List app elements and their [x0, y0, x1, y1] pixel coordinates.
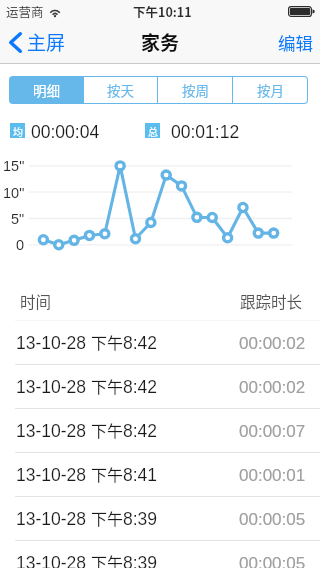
button[interactable]: 13-10-28 下午8:42: [0, 321, 320, 365]
staticText: 总: [148, 124, 158, 138]
staticText: 13-10-28 下午8:39: [16, 550, 157, 568]
staticText: 下午10:11: [133, 2, 192, 20]
staticText: 家务: [141, 28, 180, 56]
staticText: 13-10-28 下午8:42: [16, 330, 157, 353]
staticText: 13-10-28 下午8:41: [16, 462, 157, 485]
staticText: 0: [16, 237, 25, 253]
staticText: 13-10-28 下午8:42: [16, 418, 157, 441]
staticText: 运营商: [6, 2, 44, 20]
staticText: 按周: [182, 80, 209, 100]
staticText: 00:00:01: [239, 466, 306, 485]
button[interactable]: 13-10-28 下午8:39: [0, 497, 320, 541]
staticText: 00:01:12: [171, 122, 240, 138]
button[interactable]: 13-10-28 下午8:39: [0, 541, 320, 568]
staticText: 13-10-28 下午8:39: [16, 506, 157, 529]
button[interactable]: 按天: [84, 77, 157, 103]
staticText: 主屏: [27, 28, 66, 56]
button[interactable]: 主屏: [0, 21, 76, 63]
staticText: 15": [3, 158, 25, 174]
staticText: 00:00:07: [239, 422, 306, 441]
button[interactable]: 按周: [158, 77, 232, 103]
staticText: 10": [3, 185, 25, 201]
staticText: 明细: [33, 80, 60, 100]
button[interactable]: 编辑: [266, 22, 320, 63]
button[interactable]: 13-10-28 下午8:42: [0, 409, 320, 453]
button[interactable]: 13-10-28 下午8:42: [0, 365, 320, 409]
staticText: 00:00:05: [239, 554, 306, 568]
staticText: 跟踪时长: [240, 290, 303, 312]
staticText: 00:00:02: [239, 378, 306, 397]
button[interactable]: 按月: [233, 77, 307, 103]
staticText: 时间: [20, 290, 52, 312]
staticText: 5": [11, 211, 25, 227]
staticText: 均: [13, 124, 23, 138]
button[interactable]: 明细: [10, 77, 83, 103]
staticText: 编辑: [278, 30, 313, 55]
staticText: 00:00:02: [239, 334, 306, 353]
staticText: 按天: [107, 80, 134, 100]
staticText: 13-10-28 下午8:42: [16, 374, 157, 397]
staticText: 按月: [257, 80, 284, 100]
button[interactable]: 13-10-28 下午8:41: [0, 453, 320, 497]
staticText: 00:00:05: [239, 510, 306, 529]
other: Battery: [288, 6, 315, 17]
staticText: 00:00:04: [31, 122, 100, 138]
